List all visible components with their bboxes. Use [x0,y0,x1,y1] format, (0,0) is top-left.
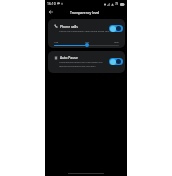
staticText: Transparency level [70,10,100,14]
staticText: Phone calls [60,24,78,28]
button[interactable]: Toggle [109,25,123,32]
button[interactable]: Back [47,8,55,16]
staticText: High [114,41,119,44]
staticText: 78 [115,2,119,6]
staticText: Low [54,41,59,44]
staticText: Automatically pause your music when you … [59,61,107,67]
button[interactable]: Phone calls [48,19,125,48]
button[interactable]: Toggle [109,58,123,65]
staticText: Adjusts the transparency level during ph… [59,30,110,33]
staticText: Auto Pause [60,55,78,59]
staticText: Mid [85,41,89,44]
staticText: 16:10 [47,1,56,6]
button[interactable]: Auto Pause [48,51,125,73]
